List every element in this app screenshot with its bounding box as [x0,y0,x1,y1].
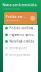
staticText: Pedido confirmado [9,26,35,30]
staticText: Pagamento aprovado [9,33,35,36]
button[interactable]: Entrega prevista [3,52,38,58]
staticText: Acompanhe o seu pedido [2,8,20,10]
staticText: Emissão em até 2 dias [6,19,20,21]
button[interactable]: Em transporte [3,45,38,51]
staticText: Entrega prevista [9,53,29,56]
staticText: Nota fiscal emitida [9,40,33,43]
staticText: Em transporte [9,46,27,50]
button[interactable]: Pagamento aprovado [3,32,38,38]
button[interactable]: Nota fiscal emitida [3,38,38,45]
staticText: Pedido em análise [6,15,27,19]
staticText: Nota será emitida [2,2,36,7]
button[interactable]: Pedido confirmado [3,25,38,31]
